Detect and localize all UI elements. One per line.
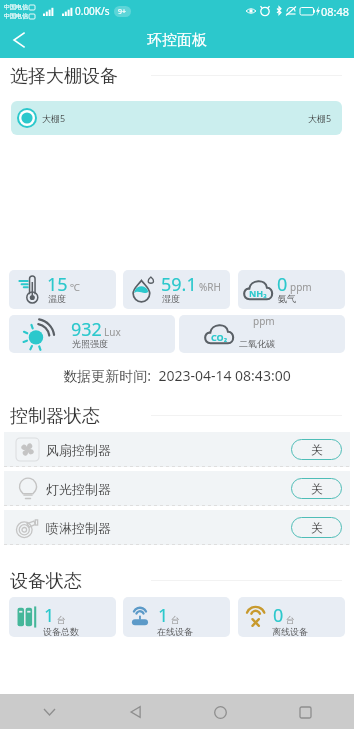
staticText: 氨气	[278, 293, 296, 304]
staticText: 1	[158, 603, 169, 628]
staticText: 离线设备	[272, 626, 308, 637]
staticText: 台	[286, 614, 295, 625]
staticText: 台	[171, 614, 180, 625]
staticText: 关	[311, 520, 323, 535]
staticText: 控制器状态	[10, 405, 100, 428]
staticText: 环控面板	[147, 31, 207, 50]
staticText: 灯光控制器	[46, 481, 111, 497]
staticText: 1	[44, 603, 55, 628]
staticText: 中国电信	[4, 12, 28, 20]
staticText: 08:48	[321, 4, 350, 19]
staticText: 大棚5	[308, 112, 332, 124]
button[interactable]: NH₃	[238, 270, 345, 309]
staticText: 设备状态	[10, 570, 82, 593]
staticText: 大棚5	[42, 112, 66, 124]
staticText: 台	[57, 614, 66, 625]
staticText: 在线设备	[157, 626, 193, 637]
button[interactable]: 15	[9, 270, 116, 309]
staticText: ℃	[70, 280, 80, 294]
button[interactable]: 大棚5	[11, 101, 342, 135]
staticText: 9+	[118, 7, 127, 17]
button[interactable]: Home	[203, 695, 237, 729]
button[interactable]: 1	[123, 597, 230, 637]
staticText: %RH	[199, 280, 221, 294]
button[interactable]: Back	[118, 695, 152, 729]
staticText: 二氧化碳	[239, 338, 275, 349]
button[interactable]: Back	[5, 26, 33, 54]
staticText: 0	[277, 272, 288, 297]
button[interactable]: 关	[291, 439, 342, 460]
button[interactable]: 关	[291, 517, 342, 538]
staticText: 光照强度	[72, 338, 108, 349]
staticText: 风扇控制器	[46, 442, 111, 458]
staticText: 选择大棚设备	[10, 65, 118, 88]
staticText: 0.00K/s	[75, 4, 110, 18]
button[interactable]: 喷淋控制器	[4, 510, 350, 545]
staticText: NH₃	[249, 287, 267, 299]
staticText: 关	[311, 481, 323, 496]
staticText: Lux	[104, 325, 121, 339]
staticText: CO₂	[211, 331, 228, 343]
staticText: ppm	[253, 315, 275, 328]
button[interactable]: 59.1	[123, 270, 230, 309]
staticText: 0	[273, 603, 284, 628]
button[interactable]: 灯光控制器	[4, 471, 350, 506]
staticText: ppm	[290, 280, 312, 294]
staticText: 15	[47, 272, 68, 297]
staticText: 932	[71, 317, 102, 342]
staticText: 59.1	[161, 272, 197, 297]
staticText: 湿度	[162, 293, 180, 304]
button[interactable]: Recents	[288, 695, 322, 729]
button[interactable]: Hide keyboard	[32, 695, 66, 729]
button[interactable]: 风扇控制器	[4, 432, 350, 467]
staticText: 温度	[48, 293, 66, 304]
staticText: 设备总数	[43, 626, 79, 637]
button[interactable]: 932	[9, 315, 175, 353]
button[interactable]: 1	[9, 597, 116, 637]
staticText: 数据更新时间: 2023-04-14 08:43:00	[0, 366, 354, 385]
staticText: 关	[311, 442, 323, 457]
staticText: 喷淋控制器	[46, 520, 111, 536]
button[interactable]: 关	[291, 478, 342, 499]
button[interactable]: CO₂	[179, 315, 345, 353]
staticText: 中国电信	[4, 3, 28, 11]
button[interactable]: 0	[238, 597, 345, 637]
